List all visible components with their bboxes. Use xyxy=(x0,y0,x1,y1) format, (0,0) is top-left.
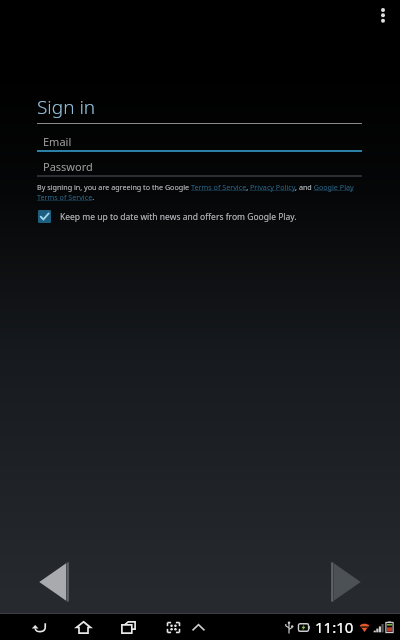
staticText: Sign in xyxy=(37,94,96,120)
button[interactable]: Back xyxy=(24,554,84,610)
button[interactable]: More options xyxy=(366,0,400,32)
button[interactable]: Recent apps xyxy=(116,615,140,639)
other: Keep me up to date, checked xyxy=(38,210,51,223)
staticText: Email xyxy=(43,134,72,149)
button[interactable]: Home xyxy=(71,615,95,639)
button[interactable]: Email xyxy=(37,133,362,152)
staticText: Keep me up to date with news and offers … xyxy=(60,211,297,223)
button[interactable]: Back xyxy=(26,615,50,639)
staticText: 11:10 xyxy=(315,617,354,637)
button[interactable]: Expand xyxy=(185,614,211,640)
button[interactable]: Keep me up to date, checked xyxy=(38,210,297,223)
button[interactable]: Screenshot xyxy=(161,615,185,639)
staticText: By signing in, you are agreeing to the G… xyxy=(37,182,366,202)
button[interactable]: 11:10 xyxy=(285,617,394,637)
button[interactable]: Next xyxy=(316,554,376,610)
button[interactable]: By signing in, you are agreeing to the G… xyxy=(37,182,366,202)
button[interactable]: Password xyxy=(37,158,362,177)
staticText: Password xyxy=(43,159,93,174)
